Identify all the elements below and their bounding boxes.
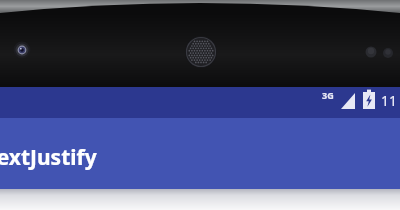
button[interactable]: TextJustify — [0, 118, 400, 189]
button[interactable]: Mobile signal 3G — [318, 87, 362, 118]
button[interactable]: Battery charging — [362, 87, 378, 118]
